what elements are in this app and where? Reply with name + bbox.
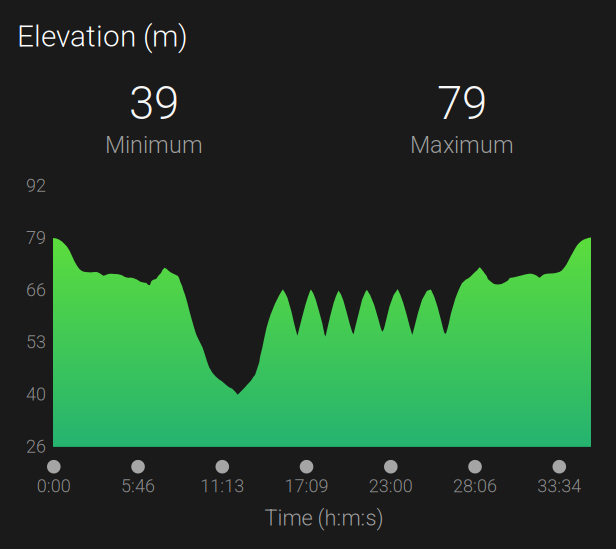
staticText: 92 (26, 175, 46, 196)
staticText: 39 (129, 77, 179, 130)
staticText: 79 (26, 227, 46, 248)
staticText: Elevation (m) (17, 19, 188, 54)
staticText: 5:46 (121, 475, 155, 497)
staticText: Time (h:m:s) (264, 505, 383, 531)
staticText: 79 (437, 77, 487, 130)
staticText: 0:00 (37, 475, 71, 497)
staticText: 53 (26, 332, 46, 353)
staticText: 11:13 (200, 475, 244, 497)
staticText: Minimum (105, 131, 203, 159)
staticText: 26 (26, 436, 46, 457)
staticText: 40 (26, 384, 46, 405)
staticText: 66 (26, 279, 46, 301)
staticText: 28:06 (453, 475, 497, 497)
staticText: 33:34 (537, 475, 581, 497)
staticText: Maximum (410, 131, 514, 159)
staticText: 17:09 (285, 475, 329, 497)
staticText: 23:00 (369, 475, 413, 497)
